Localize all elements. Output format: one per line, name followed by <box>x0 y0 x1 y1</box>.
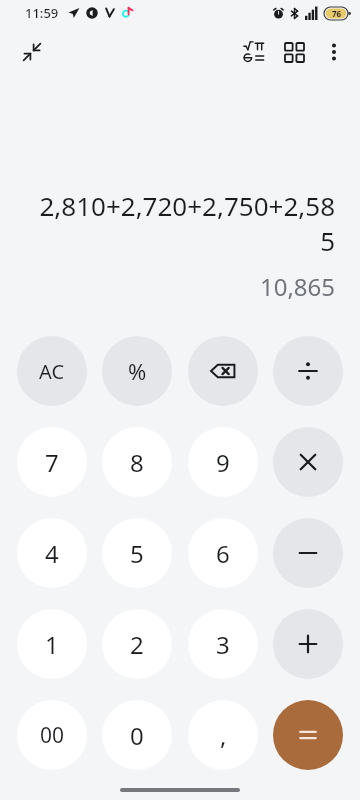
staticText: 8 <box>130 446 144 479</box>
staticText: 0 <box>130 719 144 752</box>
staticText: 3 <box>216 628 230 661</box>
button[interactable]: 00 <box>17 700 87 770</box>
staticText: 2 <box>130 628 144 661</box>
staticText: 5 <box>130 537 144 570</box>
button[interactable]: 4 <box>17 518 87 588</box>
button[interactable]: Keypad layout <box>274 32 314 72</box>
staticText: 10,865 <box>259 270 335 303</box>
button[interactable]: Minus <box>273 518 343 588</box>
button[interactable]: 6 <box>188 518 258 588</box>
button[interactable]: Collapse <box>10 30 54 74</box>
button[interactable]: Backspace <box>188 336 258 406</box>
staticText: 76 <box>332 8 342 19</box>
button[interactable]: Multiply <box>273 427 343 497</box>
staticText: 4 <box>45 537 59 570</box>
button[interactable]: Plus <box>273 609 343 679</box>
button[interactable]: Scientific mode <box>234 32 274 72</box>
staticText: % <box>128 356 147 386</box>
button[interactable]: , <box>188 700 258 770</box>
staticText: 2,810+2,720+2,750+2,585 <box>25 188 335 258</box>
staticText: 6 <box>216 537 230 570</box>
button[interactable]: Divide <box>273 336 343 406</box>
button[interactable]: 2 <box>102 609 172 679</box>
button[interactable]: 9 <box>188 427 258 497</box>
button[interactable]: % <box>102 336 172 406</box>
button[interactable]: 0 <box>102 700 172 770</box>
staticText: , <box>220 719 227 752</box>
button[interactable]: 7 <box>17 427 87 497</box>
button[interactable]: 3 <box>188 609 258 679</box>
staticText: 1 <box>45 628 59 661</box>
staticText: AC <box>39 358 65 385</box>
staticText: 9 <box>216 446 230 479</box>
staticText: 7 <box>45 446 59 479</box>
button[interactable]: 1 <box>17 609 87 679</box>
staticText: 11:59 <box>25 4 59 22</box>
button[interactable]: More options <box>314 32 354 72</box>
button[interactable]: 5 <box>102 518 172 588</box>
button[interactable]: Equals <box>273 700 343 770</box>
button[interactable]: 8 <box>102 427 172 497</box>
staticText: 00 <box>40 721 65 750</box>
button[interactable]: AC <box>17 336 87 406</box>
